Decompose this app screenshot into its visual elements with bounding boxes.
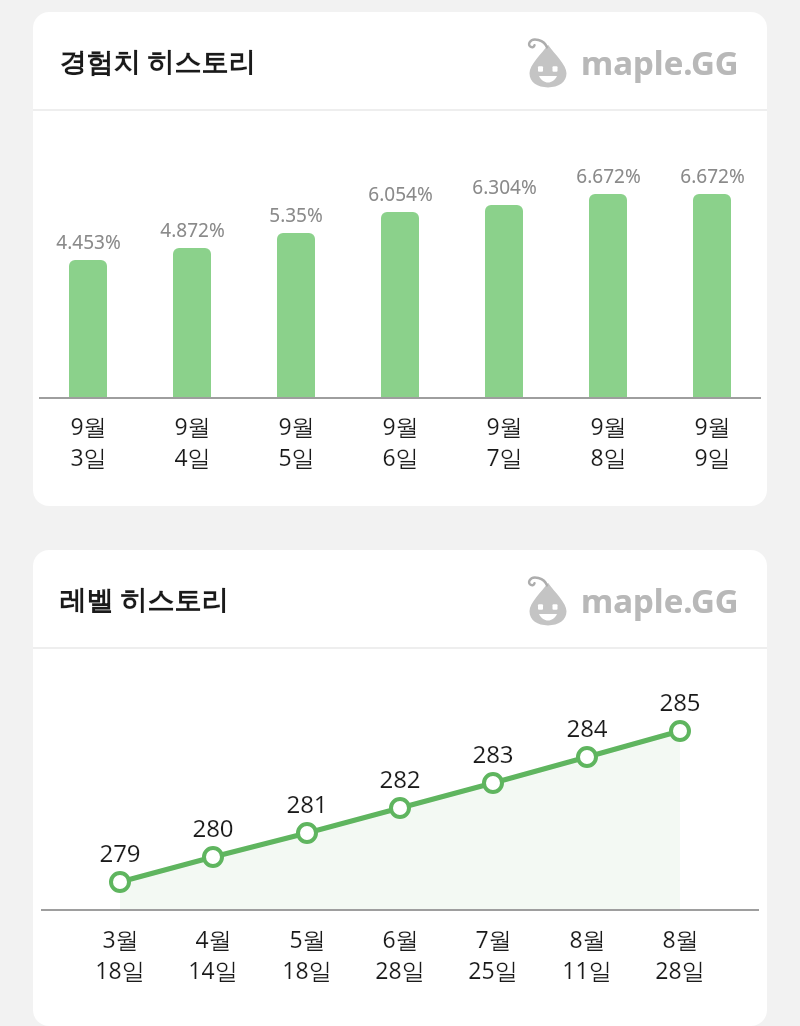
staticText: 3일 [70, 441, 107, 472]
staticText: 5월 [289, 923, 326, 954]
staticText: 3월 [102, 923, 139, 954]
staticText: 282 [379, 762, 421, 795]
staticText: 284 [566, 711, 608, 744]
staticText: 8일 [590, 441, 627, 472]
staticText: 8월 [662, 923, 699, 954]
staticText: 6일 [382, 441, 419, 472]
staticText: 경험치 히스토리 [59, 43, 256, 80]
staticText: 25일 [468, 954, 518, 985]
staticText: 9월 [694, 410, 731, 441]
staticText: 5일 [278, 441, 315, 472]
staticText: 6.054% [368, 181, 433, 207]
staticText: 7일 [486, 441, 523, 472]
staticText: 4.872% [160, 217, 225, 243]
staticText: 9일 [694, 441, 731, 472]
staticText: 6.672% [680, 163, 745, 189]
staticText: maple.GG [581, 40, 739, 85]
staticText: 5.35% [269, 202, 323, 228]
staticText: 18일 [282, 954, 332, 985]
staticText: 9월 [70, 410, 107, 441]
staticText: maple.GG [581, 578, 739, 623]
staticText: 285 [659, 685, 701, 718]
button[interactable]: 경험치 히스토리 [33, 12, 767, 506]
staticText: 281 [286, 787, 328, 820]
staticText: 4월 [195, 923, 232, 954]
staticText: 9월 [590, 410, 627, 441]
staticText: 8월 [569, 923, 606, 954]
staticText: 9월 [174, 410, 211, 441]
staticText: 28일 [375, 954, 425, 985]
staticText: 18일 [95, 954, 145, 985]
button[interactable]: maple.GG [521, 571, 741, 629]
staticText: 11일 [562, 954, 612, 985]
staticText: 6.304% [472, 174, 537, 200]
staticText: 9월 [278, 410, 315, 441]
staticText: 9월 [382, 410, 419, 441]
staticText: 6.672% [576, 163, 641, 189]
button[interactable]: 레벨 히스토리 [33, 550, 767, 1026]
button[interactable]: maple.GG [521, 33, 741, 91]
staticText: 279 [99, 836, 141, 869]
staticText: 7월 [475, 923, 512, 954]
staticText: 레벨 히스토리 [59, 581, 229, 618]
staticText: 14일 [188, 954, 238, 985]
staticText: 283 [472, 737, 514, 770]
staticText: 4일 [174, 441, 211, 472]
staticText: 4.453% [56, 229, 121, 255]
staticText: 28일 [655, 954, 705, 985]
staticText: 280 [192, 811, 234, 844]
staticText: 6월 [382, 923, 419, 954]
staticText: 9월 [486, 410, 523, 441]
